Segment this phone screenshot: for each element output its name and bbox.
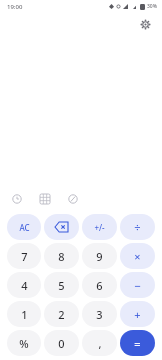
button[interactable]: 5 (44, 272, 79, 298)
button[interactable]: × (120, 243, 155, 269)
button[interactable]: 1 (7, 301, 41, 327)
staticText: 2 (58, 307, 65, 322)
button[interactable]: % (7, 330, 41, 356)
button[interactable]: Unit converter (66, 192, 80, 206)
staticText: 0 (58, 336, 65, 351)
staticText: +/- (94, 222, 105, 233)
staticText: 30% (147, 3, 157, 10)
button[interactable]: 7 (7, 243, 41, 269)
staticText: , (98, 336, 102, 351)
button[interactable]: = (120, 330, 155, 356)
staticText: 8 (58, 249, 65, 264)
button[interactable]: Backspace (44, 214, 79, 240)
staticText: 6 (96, 278, 103, 293)
staticText: 3 (96, 307, 103, 322)
button[interactable]: +/- (82, 214, 117, 240)
button[interactable]: 6 (82, 272, 117, 298)
staticText: % (19, 336, 29, 351)
staticText: 19:00 (7, 3, 23, 11)
button[interactable]: 0 (44, 330, 79, 356)
button[interactable]: 2 (44, 301, 79, 327)
staticText: 5 (58, 278, 65, 293)
button[interactable]: − (120, 272, 155, 298)
button[interactable]: History (10, 192, 24, 206)
staticText: 7 (21, 249, 28, 264)
staticText: ÷ (134, 220, 141, 235)
staticText: − (134, 278, 141, 293)
staticText: 9 (96, 249, 103, 264)
button[interactable]: ÷ (120, 214, 155, 240)
button[interactable]: 9 (82, 243, 117, 269)
staticText: + (134, 307, 141, 322)
button[interactable]: 8 (44, 243, 79, 269)
staticText: 4 (21, 278, 28, 293)
button[interactable]: 3 (82, 301, 117, 327)
staticText: 1 (21, 307, 28, 322)
staticText: AC (19, 222, 30, 233)
button[interactable]: Settings (137, 16, 153, 32)
staticText: × (134, 249, 141, 264)
button[interactable]: Scientific mode (38, 192, 52, 206)
staticText: = (134, 336, 141, 351)
button[interactable]: + (120, 301, 155, 327)
button[interactable]: AC (7, 214, 41, 240)
button[interactable]: , (82, 330, 117, 356)
button[interactable]: 4 (7, 272, 41, 298)
